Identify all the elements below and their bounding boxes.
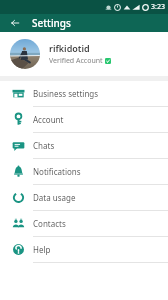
button[interactable]: Account <box>0 107 168 132</box>
staticText: 3:23 <box>151 2 165 12</box>
button[interactable]: Business settings <box>0 81 168 106</box>
staticText: Data usage <box>33 192 76 203</box>
button[interactable]: Notifications <box>0 159 168 184</box>
button[interactable]: Contacts <box>0 211 168 236</box>
staticText: Settings <box>32 16 71 30</box>
button[interactable]: Help <box>0 237 168 262</box>
staticText: Chats <box>33 140 55 151</box>
button[interactable]: rifkidotid <box>0 32 168 76</box>
staticText: Notifications <box>33 166 81 177</box>
button[interactable]: Data usage <box>0 185 168 210</box>
staticText: Business settings <box>33 88 99 99</box>
button[interactable]: Chats <box>0 133 168 158</box>
staticText: Verified Account <box>49 56 103 66</box>
staticText: Contacts <box>33 218 66 229</box>
staticText: Account <box>33 114 64 125</box>
staticText: rifkidotid <box>49 42 90 54</box>
button[interactable]: Back <box>7 15 23 31</box>
staticText: Help <box>33 244 51 255</box>
